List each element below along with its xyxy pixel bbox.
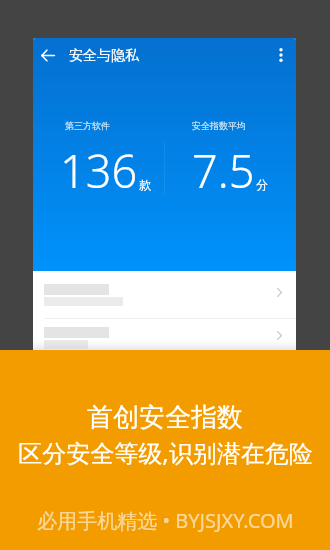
staticText: 136 — [60, 140, 138, 201]
staticText: 首创安全指数 — [87, 401, 243, 434]
staticText: 必用手机精选 • BYJSJXY.COM — [37, 507, 294, 534]
button[interactable] — [33, 325, 296, 350]
staticText: 分 — [256, 177, 268, 192]
staticText: 7.5 — [192, 140, 255, 201]
staticText: 区分安全等级,识别潜在危险 — [18, 436, 313, 469]
staticText: 第三方软件 — [65, 120, 110, 131]
button[interactable]: More options — [267, 41, 295, 69]
staticText: 安全与隐私 — [69, 47, 139, 65]
staticText: 款 — [139, 177, 151, 192]
button[interactable] — [33, 282, 296, 325]
staticText: 安全指数平均 — [192, 120, 246, 131]
button[interactable]: Back — [34, 41, 62, 69]
